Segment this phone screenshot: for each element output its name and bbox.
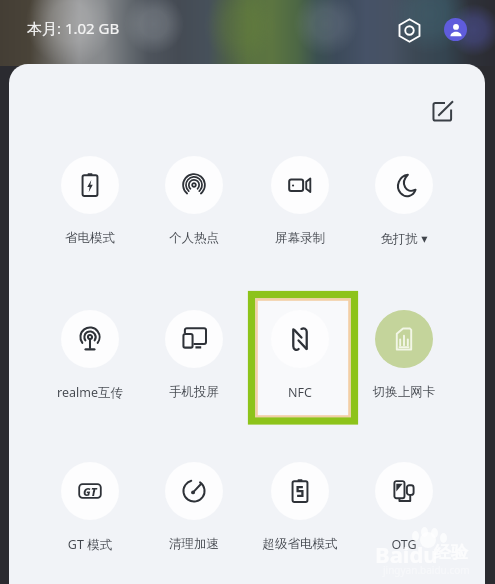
staticText: GT 模式 [43,536,137,553]
button[interactable]: 切换上网卡 [357,310,451,400]
staticText: 免打扰 ▾ [357,230,451,247]
staticText: 清理加速 [147,536,241,552]
button[interactable]: OTG [357,462,451,553]
staticText: 本月: 1.02 GB [27,18,120,38]
staticText: Baidu [375,539,438,569]
button[interactable]: 手机投屏 [147,310,241,400]
staticText: 省电模式 [43,230,137,246]
staticText: 切换上网卡 [357,384,451,400]
staticText: 个人热点 [147,230,241,246]
staticText: 屏幕录制 [253,230,347,246]
button[interactable]: Settings [393,14,425,46]
staticText: 超级省电模式 [253,536,347,552]
staticText: 经验 [434,542,468,563]
button[interactable]: Account [444,18,467,41]
staticText: NFC [253,384,347,401]
staticText: 手机投屏 [147,384,241,400]
button[interactable]: NFC [253,310,347,401]
button[interactable]: 超级省电模式 [253,462,347,552]
button[interactable]: GT [43,462,137,553]
staticText: realme互传 [43,384,137,401]
button[interactable]: 清理加速 [147,462,241,552]
button[interactable]: realme互传 [43,310,137,401]
button[interactable]: 个人热点 [147,156,241,246]
button[interactable]: 免打扰 ▾ [357,156,451,247]
button[interactable]: Edit tiles [423,92,461,130]
button[interactable]: 省电模式 [43,156,137,246]
button[interactable]: 屏幕录制 [253,156,347,246]
staticText: OTG [357,536,451,553]
staticText: GT [83,484,97,499]
